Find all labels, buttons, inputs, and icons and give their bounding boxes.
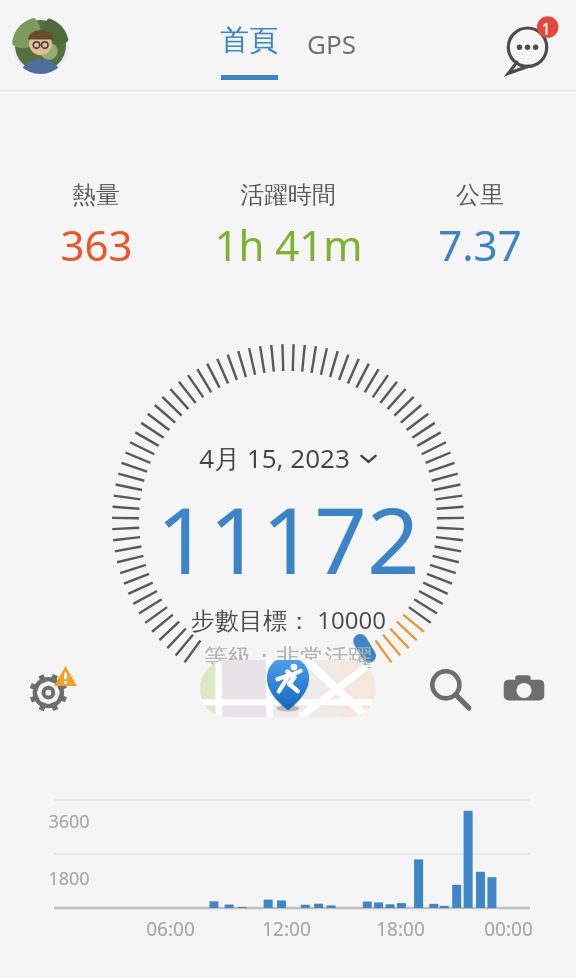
staticText: 7.37 [438,216,522,273]
button[interactable]: Settings [26,663,78,715]
button[interactable]: Messages [500,12,564,76]
staticText: 1h 41m [214,216,363,273]
staticText: 18:00 [376,916,425,942]
staticText: 熱量 [72,180,120,210]
staticText: 公里 [456,180,504,210]
staticText: 363 [60,216,133,273]
button[interactable]: 熱量 [0,180,192,273]
staticText: 等級：非常活躍 [204,643,372,673]
button[interactable]: 4月 15, 2023 [199,440,378,476]
staticText: 1 [541,18,551,36]
staticText: 首頁 [220,22,278,59]
staticText: 步數目標： 10000 [191,603,386,636]
staticText: GPS [307,26,356,61]
button[interactable]: 活躍時間 [192,180,384,273]
staticText: 06:00 [146,916,195,942]
staticText: 00:00 [484,916,533,942]
button[interactable]: Camera [498,663,550,715]
staticText: 3600 [48,809,90,834]
staticText: 12:00 [262,916,311,942]
button[interactable]: Map route [200,660,376,717]
button[interactable]: 首頁 [216,22,282,59]
staticText: 4月 15, 2023 [199,440,350,476]
staticText: 11172 [156,476,420,601]
button[interactable]: Profile [12,17,69,74]
staticText: 活躍時間 [240,180,336,210]
button[interactable]: GPS [303,26,360,61]
button[interactable]: 公里 [384,180,576,273]
staticText: 1800 [48,866,90,891]
button[interactable]: Search [423,663,475,715]
